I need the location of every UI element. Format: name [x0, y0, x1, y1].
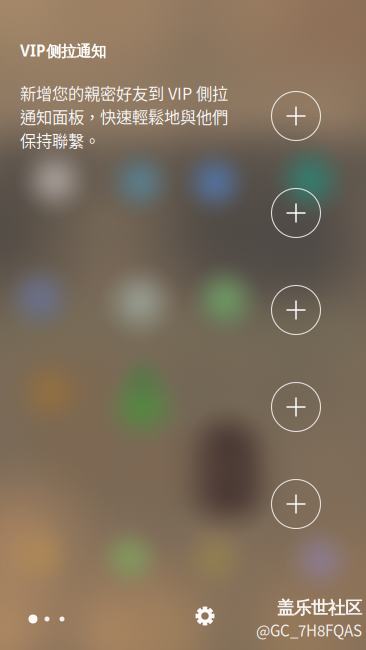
staticText: VIP侧拉通知 — [20, 40, 106, 61]
button[interactable]: Settings — [183, 594, 227, 638]
button[interactable]: Add VIP contact — [264, 84, 328, 148]
staticText: @GC_7H8FQAS — [256, 619, 362, 641]
staticText: 盖乐世社区 — [277, 597, 362, 619]
button[interactable]: Add VIP contact — [264, 472, 328, 536]
staticText: 新增您的親密好友到 VIP 側拉 通知面板，快速輕鬆地與他們 保持聯繫。 — [20, 81, 228, 152]
button[interactable]: Add VIP contact — [264, 375, 328, 439]
button[interactable]: Add VIP contact — [264, 181, 328, 245]
button[interactable]: Add VIP contact — [264, 278, 328, 342]
